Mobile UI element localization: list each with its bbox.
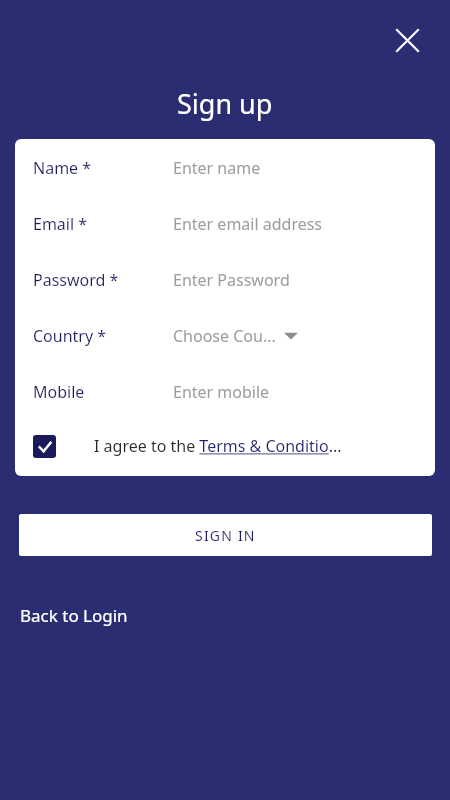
button[interactable]: I agree to the Terms & Conditio... — [33, 420, 417, 472]
staticText: Enter Password — [173, 269, 290, 291]
button[interactable]: Back to Login — [20, 604, 128, 627]
staticText: Enter mobile — [173, 381, 270, 403]
button[interactable]: Name * — [33, 140, 417, 196]
staticText: Enter email address — [173, 213, 323, 235]
staticText: Mobile — [33, 381, 85, 403]
button[interactable]: Password * — [33, 252, 417, 308]
staticText: Country * — [33, 325, 107, 347]
button[interactable]: Close — [387, 20, 427, 60]
staticText: Sign up — [177, 85, 273, 122]
staticText: Back to Login — [20, 604, 128, 627]
staticText: I agree to the Terms & Conditio... — [94, 435, 342, 457]
staticText: Email * — [33, 213, 88, 235]
staticText: Name * — [33, 157, 92, 179]
staticText: Password * — [33, 269, 119, 291]
staticText: SIGN IN — [195, 526, 256, 545]
button[interactable]: Mobile — [33, 364, 417, 420]
button[interactable]: Country * — [33, 308, 417, 364]
button[interactable]: SIGN IN — [19, 514, 432, 556]
staticText: Choose Cou... — [173, 325, 276, 347]
staticText: Enter name — [173, 157, 261, 179]
button[interactable]: Email * — [33, 196, 417, 252]
